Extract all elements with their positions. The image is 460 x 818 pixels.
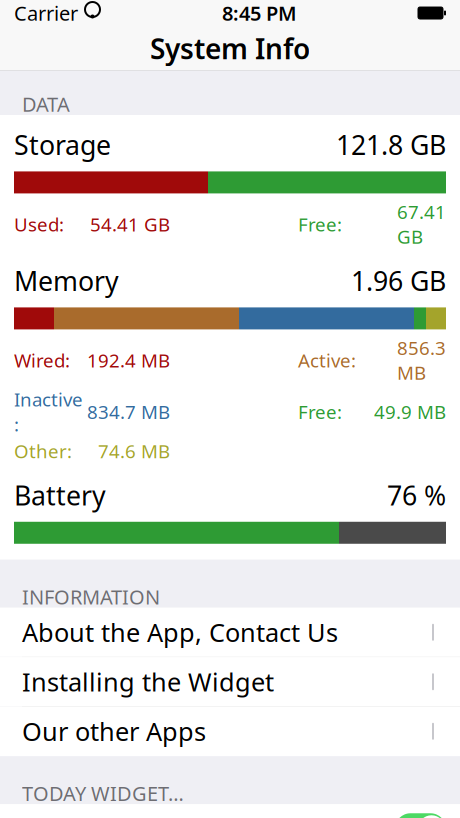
staticText: 54.41 GB <box>90 212 170 237</box>
staticText: System Info <box>150 30 310 67</box>
staticText: Installing the Widget <box>22 665 274 698</box>
staticText: About the App, Contact Us <box>22 615 338 649</box>
staticText: Used: <box>14 212 64 237</box>
staticText: Other: <box>14 439 72 463</box>
staticText: 76 % <box>387 477 446 513</box>
staticText: Active: <box>298 348 356 373</box>
staticText: Free: <box>298 212 342 237</box>
staticText: Wired: <box>14 348 70 373</box>
staticText: 8:45 PM <box>222 0 297 26</box>
button[interactable]: About the App, Contact Us <box>0 608 460 657</box>
button[interactable]: Show Storage <box>0 804 460 818</box>
staticText: DATA <box>22 91 70 117</box>
staticText: 67.41 GB <box>397 199 446 249</box>
staticText: Storage <box>14 127 111 162</box>
staticText: Our other Apps <box>22 714 206 748</box>
staticText: 192.4 MB <box>87 348 170 373</box>
staticText: Inactive: <box>14 387 83 437</box>
staticText: 49.9 MB <box>374 399 446 424</box>
staticText: Carrier <box>14 0 78 26</box>
button[interactable]: Our other Apps <box>0 707 460 756</box>
staticText: Free: <box>298 399 342 424</box>
staticText: 834.7 MB <box>87 399 170 424</box>
staticText: INFORMATION <box>22 583 160 610</box>
staticText: Memory <box>14 263 119 298</box>
staticText: Battery <box>14 477 106 513</box>
staticText: 121.8 GB <box>336 127 446 162</box>
button[interactable]: Installing the Widget <box>0 657 460 707</box>
staticText: 74.6 MB <box>98 439 170 463</box>
staticText <box>78 0 84 28</box>
staticText: 856.3 MB <box>397 335 446 385</box>
staticText: 1.96 GB <box>351 263 446 298</box>
staticText: TODAY WIDGET… <box>22 780 184 807</box>
